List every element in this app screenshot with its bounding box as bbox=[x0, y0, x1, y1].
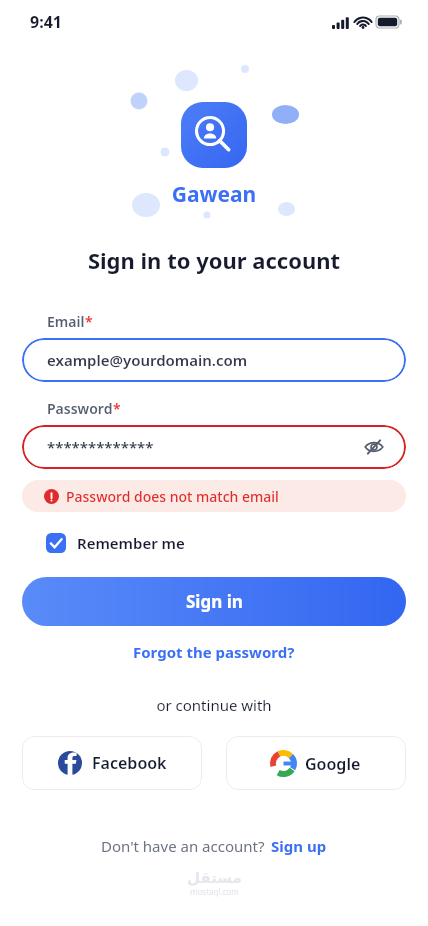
staticText: Remember me bbox=[77, 533, 185, 553]
staticText: * bbox=[113, 399, 121, 418]
button[interactable]: Sign in bbox=[22, 577, 406, 626]
button[interactable]: Forgot the password? bbox=[0, 642, 428, 662]
button[interactable]: Google bbox=[226, 736, 406, 790]
staticText: or continue with bbox=[0, 695, 428, 715]
staticText: 9:41 bbox=[30, 11, 62, 33]
button[interactable]: ************* bbox=[22, 425, 406, 469]
staticText: Sign up bbox=[271, 836, 327, 856]
staticText: Facebook bbox=[92, 752, 167, 774]
staticText: example@yourdomain.com bbox=[47, 350, 248, 370]
staticText: Password does not match email bbox=[66, 487, 279, 506]
button[interactable]: example@yourdomain.com bbox=[22, 338, 406, 382]
staticText: Forgot the password? bbox=[133, 642, 295, 662]
staticText: * bbox=[85, 312, 93, 331]
staticText: Password bbox=[47, 399, 113, 418]
staticText: مستقل bbox=[187, 869, 242, 886]
button[interactable]: Hide password bbox=[360, 433, 388, 461]
staticText: Email bbox=[47, 312, 85, 331]
staticText: Sign in to your account bbox=[0, 245, 428, 275]
button[interactable]: Facebook bbox=[22, 736, 202, 790]
staticText: Google bbox=[305, 753, 361, 775]
staticText: mostaql.com bbox=[190, 886, 239, 897]
staticText: ************* bbox=[47, 437, 154, 457]
button[interactable]: Remember me bbox=[46, 533, 185, 553]
staticText: Gawean bbox=[0, 180, 428, 209]
staticText: Don't have an account? bbox=[101, 836, 265, 856]
button[interactable]: Sign up bbox=[271, 836, 327, 856]
staticText: Sign in bbox=[186, 590, 243, 613]
